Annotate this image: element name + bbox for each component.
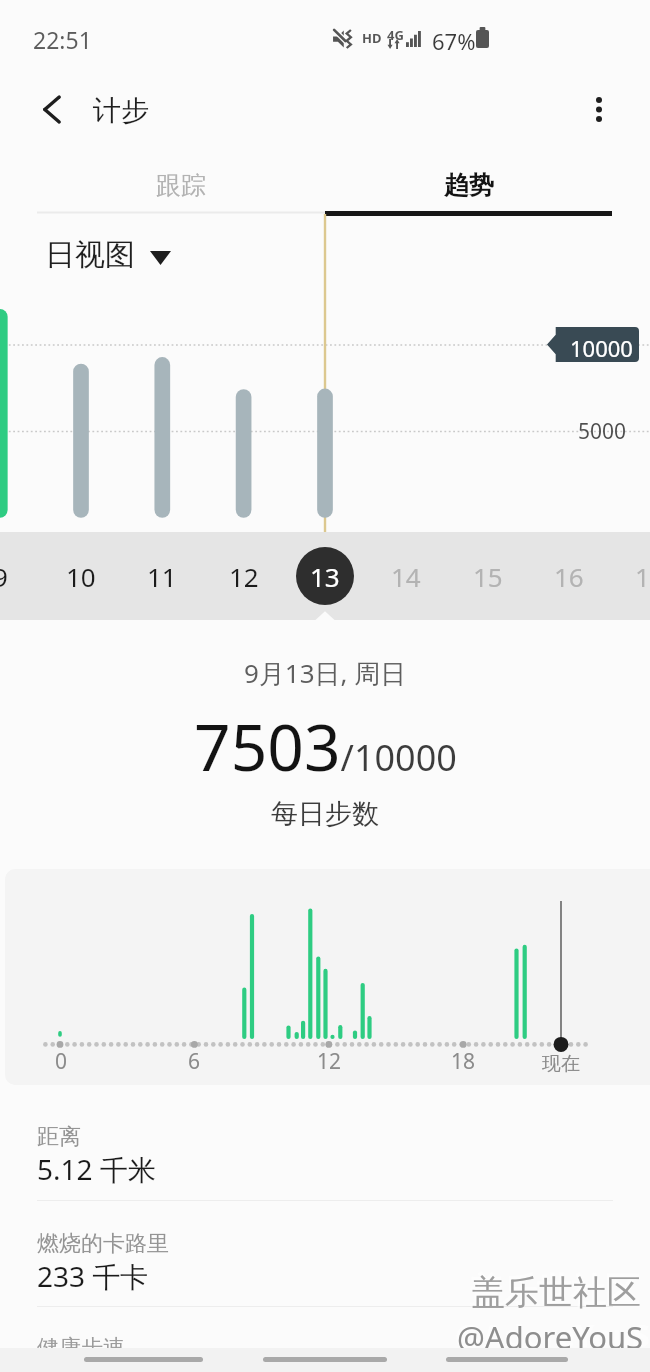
- staticText: 22:51: [33, 24, 92, 55]
- staticText: 6: [188, 1047, 201, 1076]
- button[interactable]: 15: [459, 547, 517, 605]
- staticText: 12: [317, 1047, 342, 1076]
- button[interactable]: Back: [29, 86, 75, 132]
- button[interactable]: 17: [621, 547, 650, 605]
- staticText: 计步: [93, 93, 149, 128]
- staticText: 5000: [578, 417, 627, 446]
- staticText: 233 千卡: [37, 1257, 149, 1295]
- button[interactable]: 16: [540, 547, 598, 605]
- staticText: 跟踪: [156, 170, 206, 201]
- staticText: HD: [362, 29, 382, 47]
- staticText: 9: [0, 559, 8, 594]
- button[interactable]: 11: [133, 547, 191, 605]
- staticText: 现在: [542, 1052, 580, 1076]
- staticText: 日视图: [45, 236, 135, 274]
- staticText: 13: [310, 559, 340, 594]
- staticText: 盖乐世社区: [469, 1269, 639, 1312]
- staticText: 17: [635, 559, 650, 594]
- staticText: 5.12 千米: [37, 1150, 156, 1188]
- staticText: 10000: [570, 333, 633, 363]
- button[interactable]: 趋势: [325, 156, 612, 214]
- staticText: 16: [554, 559, 584, 594]
- staticText: @AdoreYouS: [455, 1314, 650, 1356]
- staticText: 趋势: [444, 170, 494, 201]
- staticText: 9月13日, 周日: [244, 655, 407, 691]
- staticText: @AdoreYouS: [457, 1316, 644, 1358]
- staticText: 18: [451, 1047, 476, 1076]
- button[interactable]: 距离: [0, 1104, 650, 1200]
- button[interactable]: 燃烧的卡路里: [0, 1211, 650, 1306]
- button[interactable]: 14: [377, 547, 435, 605]
- staticText: 4G: [387, 26, 404, 44]
- staticText: 燃烧的卡路里: [37, 1230, 169, 1258]
- button[interactable]: More options: [576, 86, 622, 132]
- button[interactable]: Change time range: [140, 240, 180, 276]
- staticText: 10: [66, 559, 96, 594]
- staticText: 盖乐世社区: [471, 1271, 641, 1314]
- button[interactable]: 12: [215, 547, 273, 605]
- staticText: 每日步数: [271, 797, 379, 831]
- staticText: 7503/10000: [194, 703, 457, 790]
- staticText: 12: [229, 559, 259, 594]
- staticText: 67%: [432, 26, 476, 56]
- button[interactable]: 跟踪: [37, 156, 325, 214]
- staticText: 11: [147, 559, 177, 594]
- staticText: 0: [55, 1047, 68, 1076]
- staticText: 15: [473, 559, 503, 594]
- button[interactable]: 9: [0, 547, 29, 605]
- staticText: 14: [391, 559, 421, 594]
- staticText: 健康步速: [37, 1334, 125, 1362]
- staticText: 距离: [37, 1123, 81, 1151]
- button[interactable]: 13: [296, 547, 354, 605]
- button[interactable]: 10: [52, 547, 110, 605]
